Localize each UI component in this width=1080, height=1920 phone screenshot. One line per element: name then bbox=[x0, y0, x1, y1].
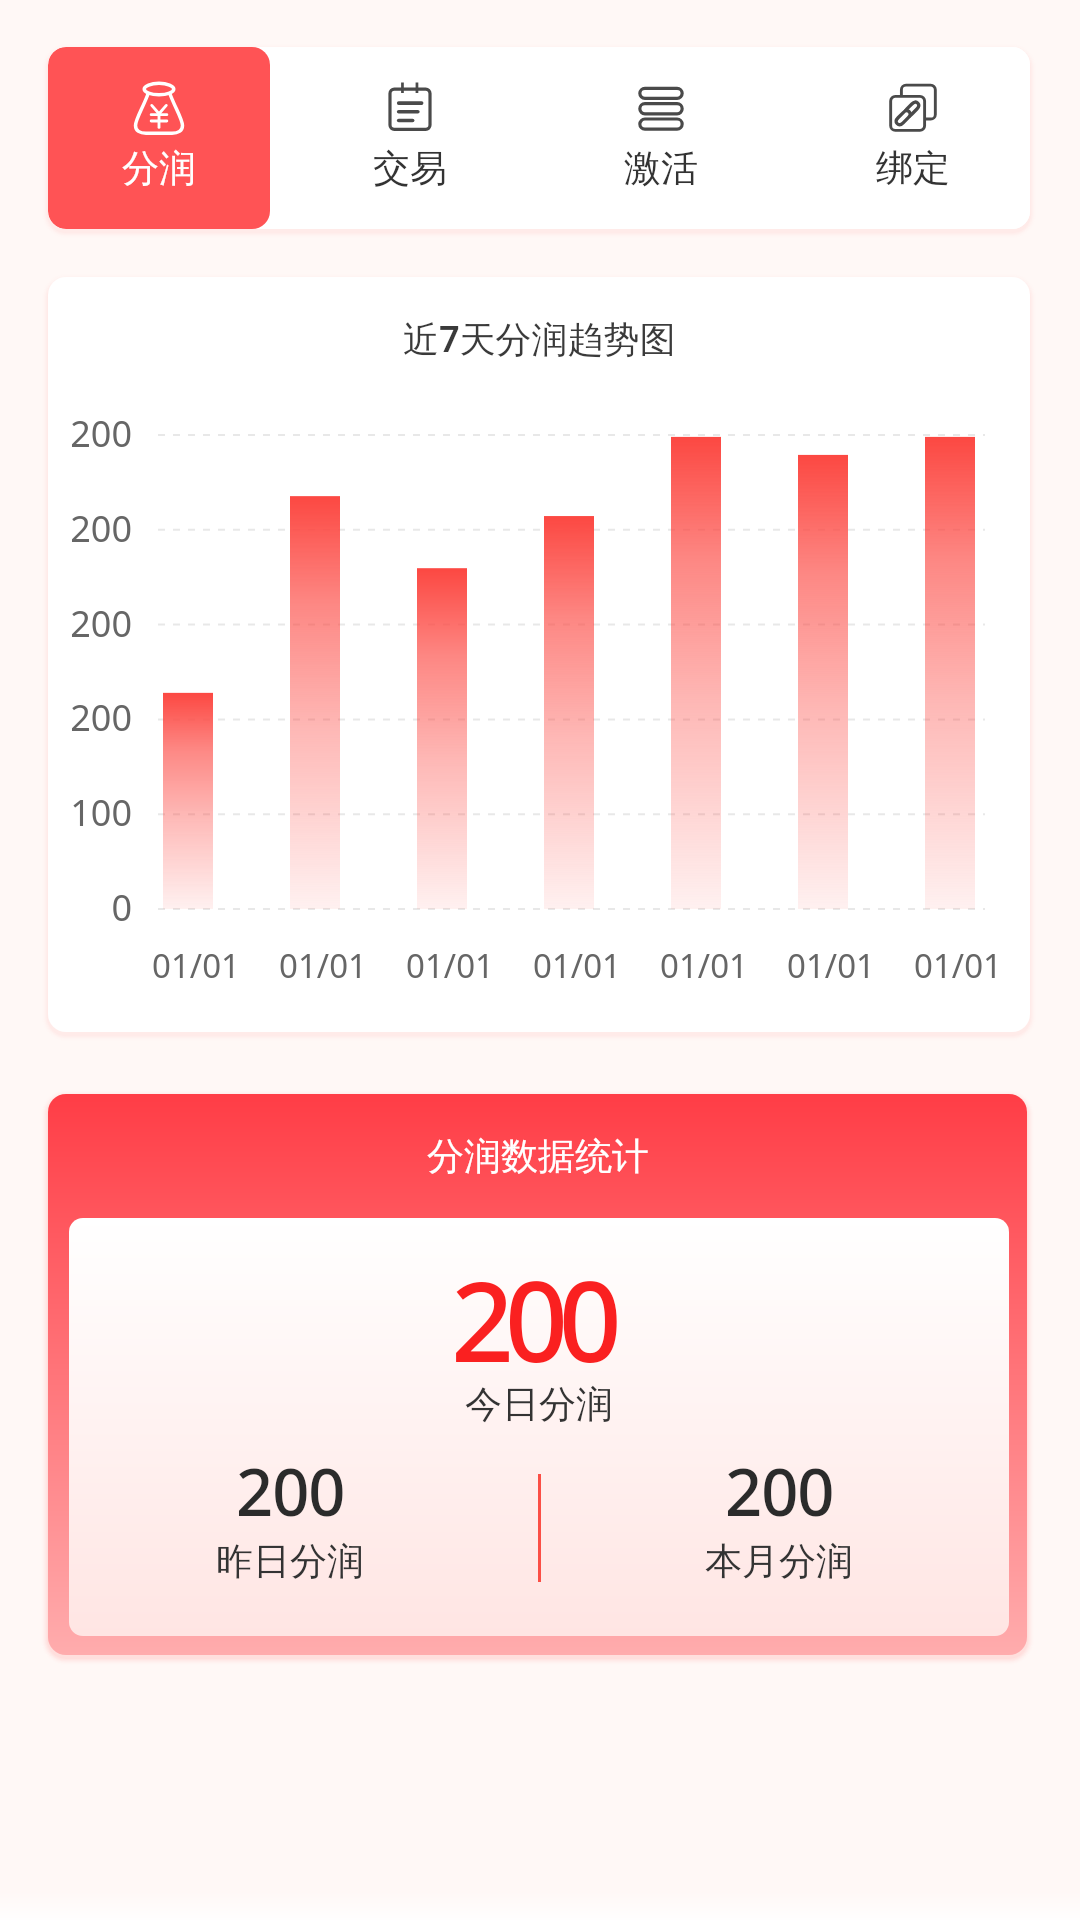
button[interactable]: 交易 bbox=[285, 47, 535, 229]
staticText: 绑定 bbox=[876, 145, 950, 192]
staticText: 200 bbox=[48, 599, 132, 648]
staticText: 01/01 bbox=[888, 943, 1028, 988]
button[interactable]: 绑定 bbox=[788, 47, 1030, 229]
staticText: 01/01 bbox=[126, 943, 266, 988]
staticText: 200 bbox=[48, 409, 132, 458]
staticText: 100 bbox=[48, 788, 132, 837]
staticText: 200 bbox=[725, 1447, 834, 1536]
staticText: 01/01 bbox=[634, 943, 774, 988]
staticText: 今日分润 bbox=[465, 1381, 613, 1428]
staticText: 昨日分润 bbox=[216, 1538, 364, 1585]
staticText: 200 bbox=[48, 504, 132, 553]
staticText: 01/01 bbox=[761, 943, 901, 988]
staticText: 分润 bbox=[122, 145, 196, 192]
staticText: 激活 bbox=[624, 145, 698, 192]
staticText: 本月分润 bbox=[705, 1538, 853, 1585]
staticText: 01/01 bbox=[380, 943, 520, 988]
staticText: 200 bbox=[48, 693, 132, 742]
staticText: 近7天分润趋势图 bbox=[403, 314, 676, 363]
button[interactable]: 200 bbox=[150, 1447, 430, 1585]
staticText: 200 bbox=[451, 1244, 613, 1394]
button[interactable]: 分润 bbox=[48, 47, 270, 229]
staticText: 200 bbox=[236, 1447, 345, 1536]
button[interactable]: 激活 bbox=[536, 47, 786, 229]
staticText: 01/01 bbox=[507, 943, 647, 988]
staticText: 分润数据统计 bbox=[427, 1133, 649, 1180]
staticText: 交易 bbox=[373, 145, 447, 192]
staticText: 01/01 bbox=[253, 943, 393, 988]
button[interactable]: 200 bbox=[639, 1447, 919, 1585]
staticText: 0 bbox=[48, 883, 132, 932]
